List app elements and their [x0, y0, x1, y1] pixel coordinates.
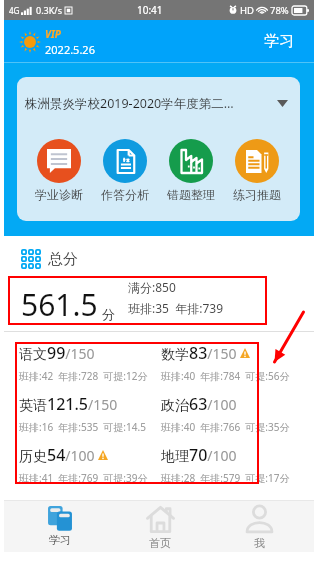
staticText: 学业诊断: [35, 187, 83, 202]
button[interactable]: 练习推题: [224, 139, 290, 202]
staticText: 561.5: [21, 284, 98, 325]
staticText: 总分: [48, 250, 78, 269]
button[interactable]: 首页: [114, 501, 206, 552]
staticText: 历史54/100: [19, 444, 95, 466]
button[interactable]: 学习: [14, 501, 106, 552]
button[interactable]: 学习: [260, 28, 298, 55]
staticText: 学习: [49, 533, 71, 547]
staticText: 班排:28 年排:579 可提:17分: [161, 471, 290, 485]
button[interactable]: 数学83/150: [161, 332, 314, 383]
staticText: 首页: [149, 536, 171, 550]
staticText: 练习推题: [233, 187, 281, 202]
button[interactable]: 我: [213, 501, 305, 552]
button[interactable]: 政治63/100: [161, 383, 314, 434]
staticText: 10:41: [137, 3, 163, 17]
staticText: 我: [254, 536, 265, 550]
staticText: 班排:42 年排:728 可提:12分: [19, 369, 148, 383]
button[interactable]: 历史54/100: [19, 434, 159, 485]
staticText: 满分:850: [128, 279, 176, 295]
staticText: 班排:41 年排:769 可提:39分: [19, 471, 148, 485]
staticText: HD: [240, 4, 254, 17]
staticText: 4G: [9, 5, 20, 16]
staticText: 作答分析: [101, 187, 149, 202]
staticText: 2022.5.26: [45, 42, 95, 57]
staticText: 错题整理: [167, 187, 215, 202]
button[interactable]: 英语121.5/150: [19, 383, 159, 434]
staticText: 政治63/100: [161, 393, 237, 415]
staticText: 78%: [270, 4, 289, 17]
staticText: 分: [102, 306, 115, 322]
staticText: 班排:40 年排:766 可提:35分: [161, 420, 290, 434]
staticText: 英语121.5/150: [19, 393, 118, 415]
button[interactable]: 错题整理: [158, 139, 224, 202]
staticText: VIP: [45, 27, 61, 41]
button[interactable]: 株洲景炎学校2019-2020学年度第二…: [25, 77, 288, 129]
button[interactable]: 地理70/100: [161, 434, 314, 485]
button[interactable]: 作答分析: [92, 139, 158, 202]
staticText: 班排:16 年排:535 可提:14.5分: [19, 420, 155, 434]
staticText: 地理70/100: [161, 444, 237, 466]
staticText: 学习: [264, 32, 294, 51]
staticText: 班排:35 年排:739: [128, 300, 223, 316]
button[interactable]: 语文99/150: [19, 332, 159, 383]
staticText: 语文99/150: [19, 342, 95, 364]
staticText: 班排:40 年排:784 可提:56分: [161, 369, 290, 383]
button[interactable]: 学业诊断: [26, 139, 92, 202]
staticText: 株洲景炎学校2019-2020学年度第二…: [25, 95, 234, 112]
staticText: 数学83/150: [161, 342, 237, 364]
staticText: 0.3K/s: [36, 4, 62, 16]
